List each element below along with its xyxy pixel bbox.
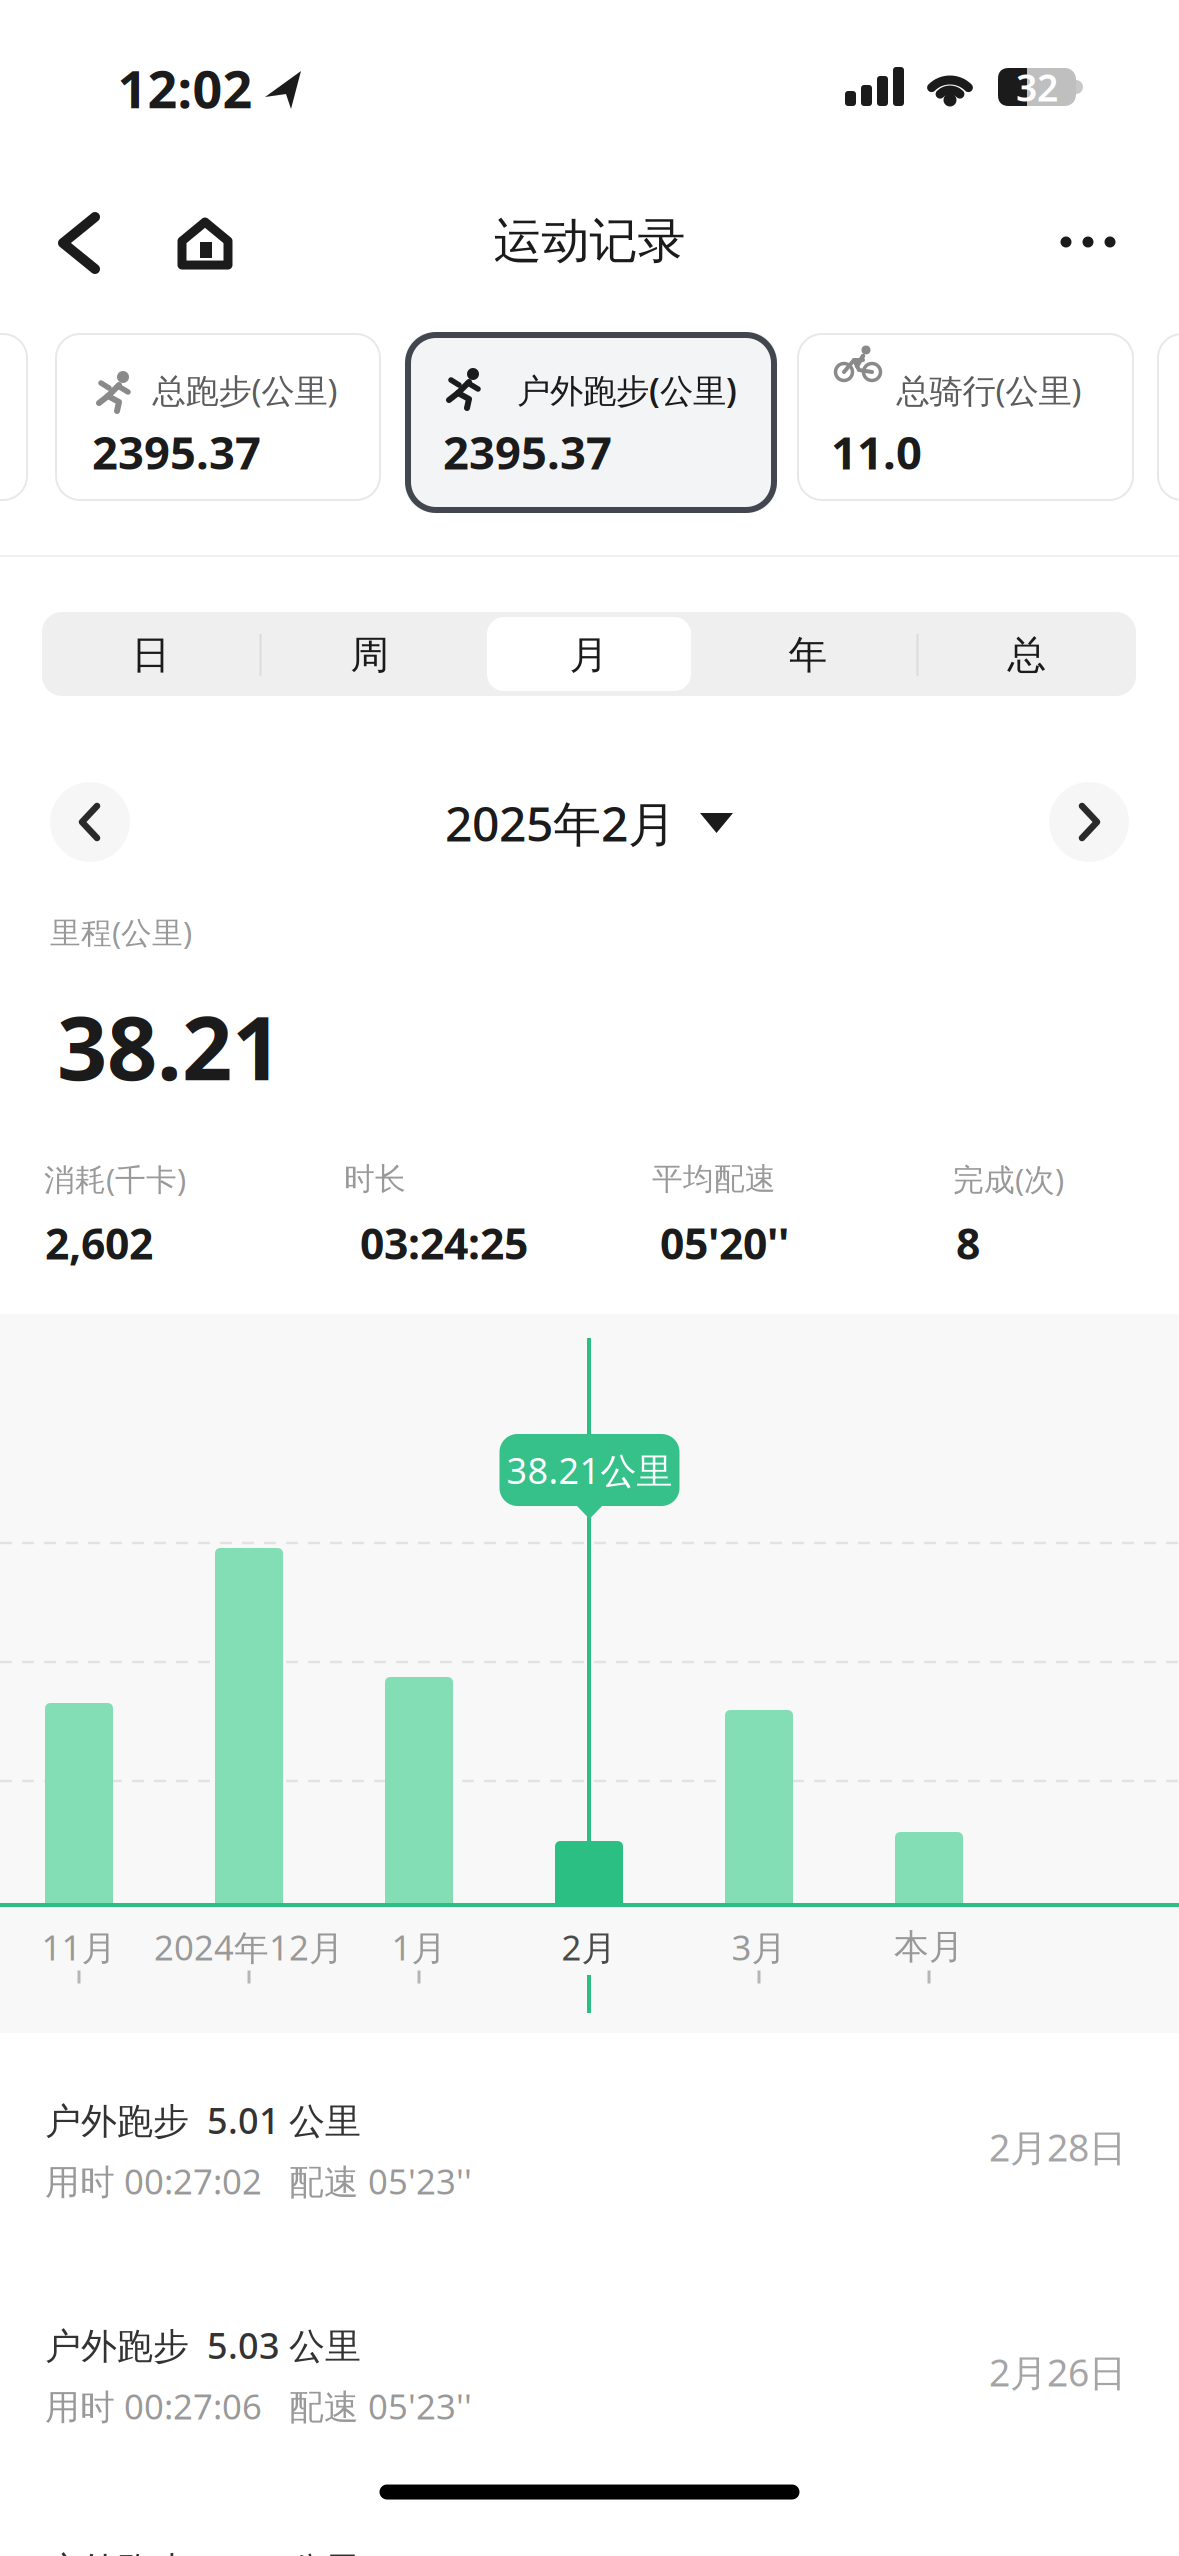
staticText: 消耗(千卡) (44, 1159, 186, 1199)
staticText: 38.21 (57, 988, 282, 1104)
staticText: 用时 00:27:06 配速 05'23'' (45, 2383, 472, 2429)
staticText: 2024年12月 (154, 1924, 344, 1970)
button[interactable]: 户外跑步(公里) (405, 332, 777, 513)
staticText: 03:24:25 (360, 1215, 528, 1271)
button[interactable]: 周 (265, 615, 475, 695)
staticText: 里程(公里) (50, 912, 192, 952)
button[interactable]: 户外跑步 5.01 公里 (0, 2065, 1179, 2255)
button[interactable]: 2025年2月 (445, 791, 733, 855)
staticText: 用时 00:27:02 配速 05'23'' (45, 2158, 472, 2204)
staticText: 8 (956, 1215, 980, 1271)
button[interactable]: Previous month (50, 782, 130, 862)
button[interactable]: Back (49, 208, 109, 278)
staticText: 运动记录 (493, 211, 685, 270)
button[interactable]: 月 (487, 618, 691, 692)
staticText: 38.21公里 (506, 1446, 672, 1494)
staticText: 12:02 (117, 53, 252, 123)
staticText: 2月 (561, 1924, 616, 1970)
staticText: 年 (788, 631, 827, 679)
staticText: 总骑行(公里) (896, 368, 1081, 412)
button[interactable]: Home (173, 211, 237, 275)
button[interactable]: Next month (1049, 782, 1129, 862)
staticText: 2395.37 (443, 422, 612, 482)
staticText: 05'20'' (660, 1215, 789, 1271)
button[interactable]: 总跑步(公里) (55, 333, 381, 501)
staticText: 户外跑步 5.03 公里 (45, 2545, 361, 2556)
staticText: 3月 (731, 1924, 786, 1970)
staticText: 2395.37 (92, 422, 261, 482)
button[interactable]: More (1053, 222, 1123, 262)
staticText: 2月26日 (989, 2347, 1126, 2397)
staticText: 11月 (41, 1924, 116, 1970)
button[interactable]: 日 (46, 615, 256, 695)
staticText: 户外跑步 5.01 公里 (45, 2096, 361, 2144)
button[interactable]: 总 (922, 615, 1132, 695)
button[interactable]: 年 (703, 615, 913, 695)
staticText: 2,602 (45, 1215, 153, 1271)
staticText: 月 (569, 631, 608, 679)
staticText: 总 (1007, 631, 1046, 679)
staticText: 日 (131, 631, 170, 679)
staticText: 2月28日 (989, 2122, 1126, 2172)
staticText: 时长 (344, 1160, 406, 1198)
button[interactable]: 总骑行(公里) (797, 333, 1134, 501)
button[interactable]: 户外跑步 5.03 公里 (0, 2514, 1179, 2556)
staticText: 完成(次) (953, 1159, 1064, 1199)
staticText: 平均配速 (652, 1160, 776, 1198)
staticText: 32 (1016, 62, 1058, 112)
staticText: 总跑步(公里) (152, 368, 337, 412)
staticText: 周 (350, 631, 389, 679)
staticText: 1月 (391, 1924, 446, 1970)
button[interactable]: 户外跑步 5.03 公里 (0, 2290, 1179, 2480)
staticText: 户外跑步 5.03 公里 (45, 2321, 361, 2369)
staticText: 本月 (894, 1926, 964, 1968)
staticText: 2025年2月 (445, 791, 676, 855)
staticText: 11.0 (831, 422, 922, 482)
staticText: 户外跑步(公里) (517, 368, 737, 412)
